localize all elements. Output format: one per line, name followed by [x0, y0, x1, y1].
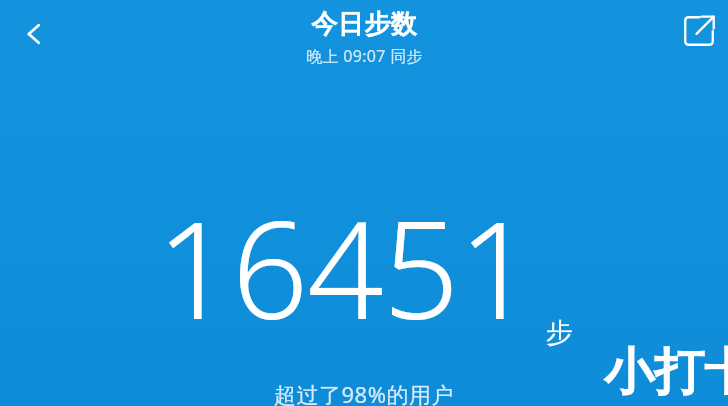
staticText: 晚上 09:07 同步	[306, 45, 423, 67]
staticText: 今日步数	[311, 8, 417, 41]
staticText: 步	[546, 316, 573, 350]
staticText: 小打卡	[604, 341, 728, 404]
staticText: 超过了98%的用户	[274, 379, 454, 406]
button[interactable]: Share	[674, 6, 724, 56]
staticText: 16451	[156, 176, 534, 359]
button[interactable]: Back	[8, 8, 60, 60]
